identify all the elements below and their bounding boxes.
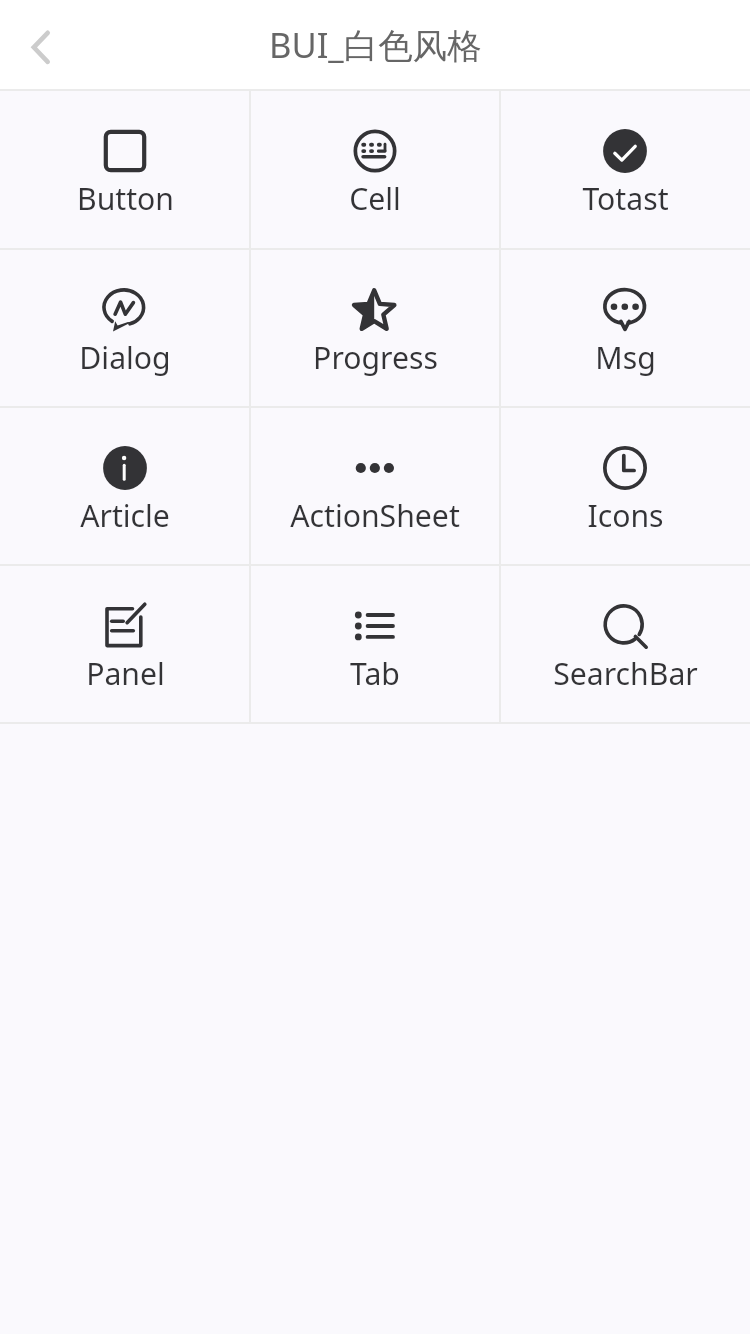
button[interactable]: Cell xyxy=(250,91,500,250)
button[interactable]: SearchBar xyxy=(500,566,750,724)
button[interactable]: ActionSheet xyxy=(250,408,500,566)
button[interactable]: Msg xyxy=(500,250,750,408)
button[interactable]: Icons xyxy=(500,408,750,566)
staticText: Progress xyxy=(313,337,438,378)
staticText: Msg xyxy=(595,337,656,378)
staticText: Article xyxy=(80,495,170,536)
staticText: Totast xyxy=(582,178,669,219)
staticText: Cell xyxy=(349,178,401,219)
staticText: Dialog xyxy=(79,337,171,378)
staticText: BUI_白色风格 xyxy=(269,21,482,68)
button[interactable]: Progress xyxy=(250,250,500,408)
staticText: Panel xyxy=(86,653,165,694)
staticText: Icons xyxy=(587,495,664,536)
button[interactable]: Totast xyxy=(500,91,750,250)
button[interactable]: Button xyxy=(0,91,250,250)
button[interactable]: Dialog xyxy=(0,250,250,408)
staticText: Tab xyxy=(350,653,400,694)
staticText: Button xyxy=(77,178,174,219)
staticText: ActionSheet xyxy=(290,495,460,536)
button[interactable]: Tab xyxy=(250,566,500,724)
button[interactable]: Article xyxy=(0,408,250,566)
staticText: SearchBar xyxy=(553,653,698,694)
button[interactable]: Back xyxy=(0,0,82,91)
button[interactable]: Panel xyxy=(0,566,250,724)
